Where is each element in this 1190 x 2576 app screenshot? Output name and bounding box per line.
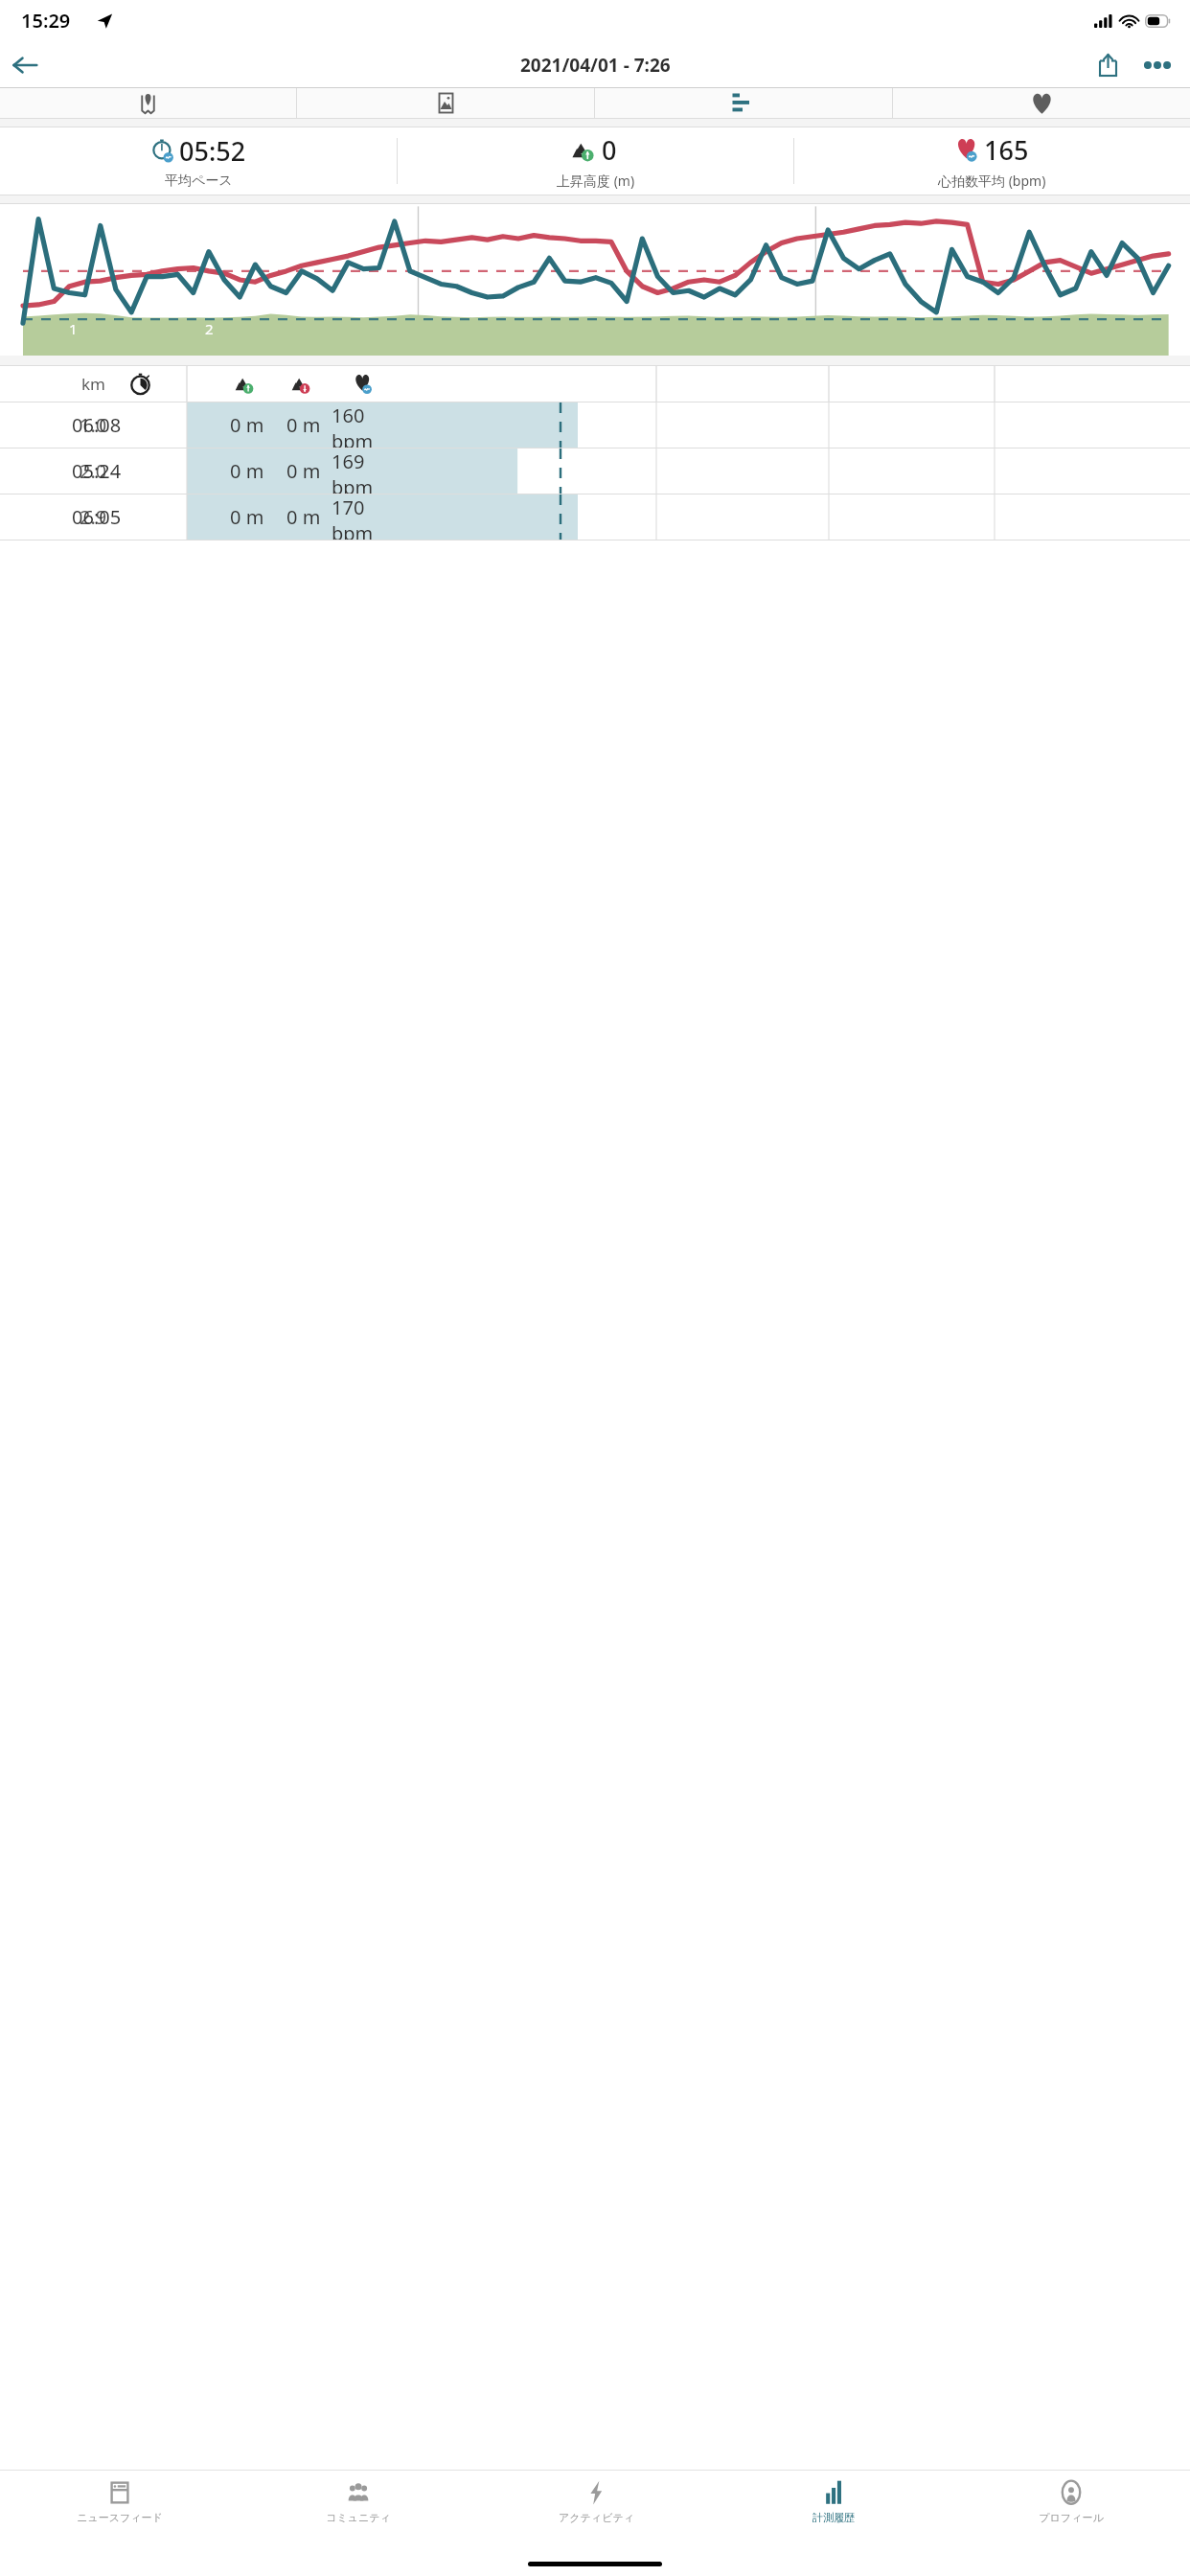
- staticText: 心拍数平均 (bpm): [938, 172, 1046, 190]
- staticText: 05:24: [72, 458, 122, 484]
- staticText: 0 m: [230, 504, 264, 530]
- button[interactable]: 計測履歴: [715, 2471, 952, 2543]
- staticText: 165: [984, 132, 1029, 168]
- staticText: 1: [69, 319, 78, 338]
- button[interactable]: Back: [0, 42, 50, 87]
- staticText: 06:05: [72, 504, 122, 530]
- button[interactable]: Map: [0, 88, 296, 118]
- staticText: 0 m: [286, 504, 321, 530]
- staticText: 0 m: [230, 412, 264, 438]
- staticText: ニュースフィード: [77, 2511, 163, 2524]
- staticText: 2.0: [80, 458, 107, 484]
- staticText: コミュニティ: [326, 2511, 391, 2524]
- staticText: 170 bpm: [332, 494, 397, 540]
- button[interactable]: プロフィール: [952, 2471, 1190, 2543]
- staticText: km: [81, 373, 105, 395]
- staticText: 1.0: [80, 412, 107, 438]
- staticText: 15:29: [21, 8, 71, 34]
- staticText: 計測履歴: [812, 2511, 855, 2524]
- button[interactable]: More options: [1133, 42, 1182, 87]
- button[interactable]: ニュースフィード: [0, 2471, 239, 2543]
- staticText: 0 m: [230, 458, 264, 484]
- button[interactable]: Photos: [297, 88, 594, 118]
- staticText: プロフィール: [1039, 2511, 1104, 2524]
- staticText: 160 bpm: [332, 402, 397, 448]
- staticText: 0 m: [286, 412, 321, 438]
- staticText: 0 m: [286, 458, 321, 484]
- staticText: アクティビティ: [559, 2511, 634, 2524]
- button[interactable]: 1.0: [0, 402, 1190, 448]
- button[interactable]: Heart rate: [893, 88, 1190, 118]
- button[interactable]: 2.0: [0, 448, 1190, 494]
- button[interactable]: 2.9: [0, 494, 1190, 540]
- button[interactable]: コミュニティ: [239, 2471, 477, 2543]
- staticText: 2021/04/01 - 7:26: [520, 53, 671, 78]
- button[interactable]: Charts: [595, 88, 892, 118]
- staticText: 平均ペース: [165, 172, 233, 190]
- staticText: 上昇高度 (m): [557, 172, 635, 190]
- staticText: 0: [602, 132, 617, 168]
- staticText: 05:52: [179, 133, 246, 169]
- staticText: 2.9: [80, 504, 107, 530]
- button[interactable]: アクティビティ: [477, 2471, 715, 2543]
- staticText: 06:08: [72, 412, 122, 438]
- staticText: 169 bpm: [332, 448, 397, 494]
- button[interactable]: Share: [1083, 42, 1133, 87]
- staticText: 2: [205, 319, 214, 338]
